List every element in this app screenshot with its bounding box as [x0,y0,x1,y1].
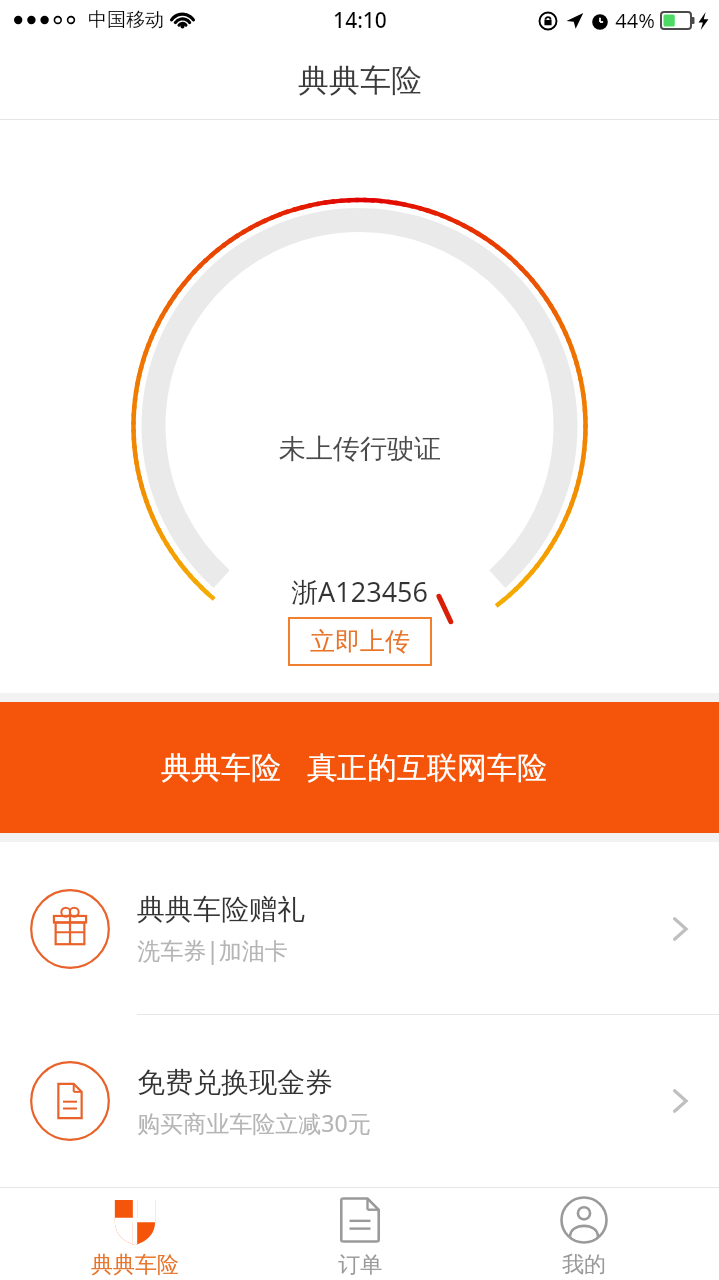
staticText: 洗车券|加油卡 [137,934,288,965]
staticText: 订单 [338,1251,382,1279]
button[interactable]: 典典车险赠礼 [0,842,719,1015]
button[interactable]: 立即上传 [288,617,432,666]
staticText: 我的 [562,1251,606,1279]
button[interactable]: 典典车险 [0,702,719,833]
staticText: 未上传行驶证 [279,432,441,466]
button[interactable]: 免费兑换现金券 [0,1015,719,1187]
staticText: 真正的互联网车险 [307,749,547,787]
staticText: 14:10 [333,6,387,35]
button[interactable]: 订单 [270,1187,450,1280]
staticText: 典典车险 [161,749,281,787]
button[interactable]: 我的 [494,1187,674,1280]
staticText: 购买商业车险立减30元 [137,1107,371,1138]
staticText: 典典车险 [91,1251,179,1279]
staticText: 典典车险赠礼 [137,892,305,927]
staticText: 中国移动 [88,8,164,32]
staticText: 免费兑换现金券 [137,1065,333,1100]
staticText: 典典车险 [298,61,422,100]
staticText: 浙A123456 [291,573,428,610]
staticText: 44% [615,7,655,34]
button[interactable]: 典典车险 [45,1187,225,1280]
staticText: 立即上传 [310,626,410,657]
